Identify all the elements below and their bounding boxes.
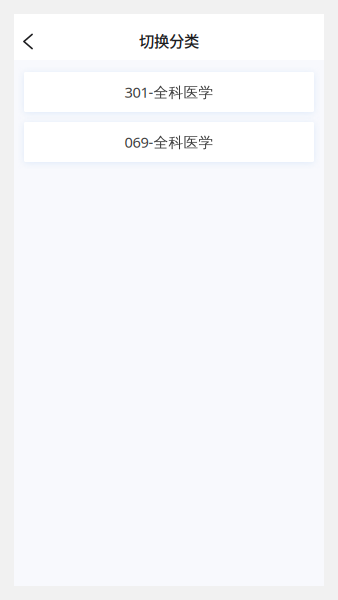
staticText: 切换分类 xyxy=(139,29,199,51)
button[interactable]: 301-全科医学 xyxy=(24,72,314,112)
staticText: 069-全科医学 xyxy=(124,132,213,152)
staticText: 301-全科医学 xyxy=(124,82,213,102)
button[interactable]: 069-全科医学 xyxy=(24,122,314,162)
button[interactable]: Back xyxy=(14,20,46,60)
